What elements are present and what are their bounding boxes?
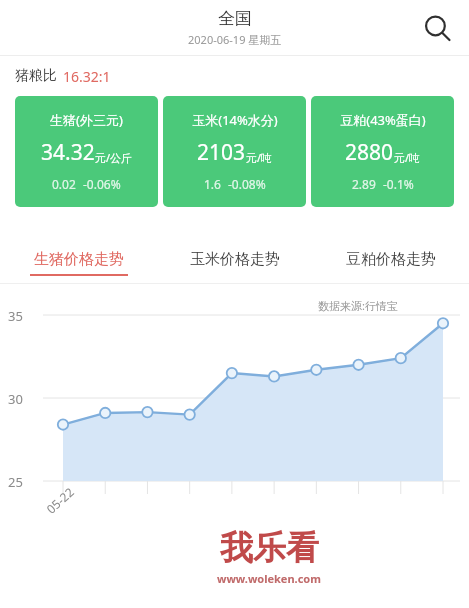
button[interactable]: 玉米(14%水分)	[163, 96, 306, 207]
staticText: 数据来源:行情宝	[318, 298, 398, 313]
button[interactable]: Search	[415, 6, 459, 50]
staticText: 2103	[197, 138, 246, 167]
button[interactable]: 生猪(外三元)	[15, 96, 158, 207]
staticText: -0.06%	[83, 176, 121, 192]
staticText: -0.1%	[383, 176, 414, 192]
staticText: 34.32	[41, 138, 95, 167]
staticText: 我乐看	[220, 527, 319, 569]
staticText: 生猪(外三元)	[50, 111, 123, 129]
staticText: www.woleken.com	[217, 571, 321, 586]
staticText: 豆粕(43%蛋白)	[340, 111, 426, 129]
staticText: 2020-06-19 星期五	[188, 32, 282, 47]
staticText: 2880	[345, 138, 394, 167]
button[interactable]: 豆粕(43%蛋白)	[311, 96, 454, 207]
staticText: 玉米(14%水分)	[192, 111, 278, 129]
staticText: 豆粕价格走势	[346, 250, 436, 269]
staticText: 元/吨	[246, 150, 273, 165]
staticText: 2.89	[352, 176, 376, 192]
staticText: 30	[8, 390, 23, 408]
button[interactable]: 玉米价格走势	[157, 243, 313, 283]
staticText: 玉米价格走势	[190, 250, 280, 269]
staticText: 元/吨	[394, 150, 421, 165]
staticText: 元/公斤	[95, 150, 133, 165]
staticText: 猪粮比	[15, 67, 57, 85]
button[interactable]: 豆粕价格走势	[313, 243, 469, 283]
staticText: 16.32:1	[63, 67, 111, 86]
staticText: -0.08%	[228, 176, 266, 192]
staticText: 25	[8, 473, 23, 491]
staticText: 1.6	[204, 176, 221, 192]
staticText: 生猪价格走势	[34, 250, 124, 269]
staticText: 0.02	[52, 176, 76, 192]
button[interactable]: 生猪价格走势	[0, 243, 157, 283]
staticText: 35	[8, 307, 23, 325]
staticText: 05-22	[43, 483, 77, 517]
staticText: 全国	[218, 8, 252, 29]
